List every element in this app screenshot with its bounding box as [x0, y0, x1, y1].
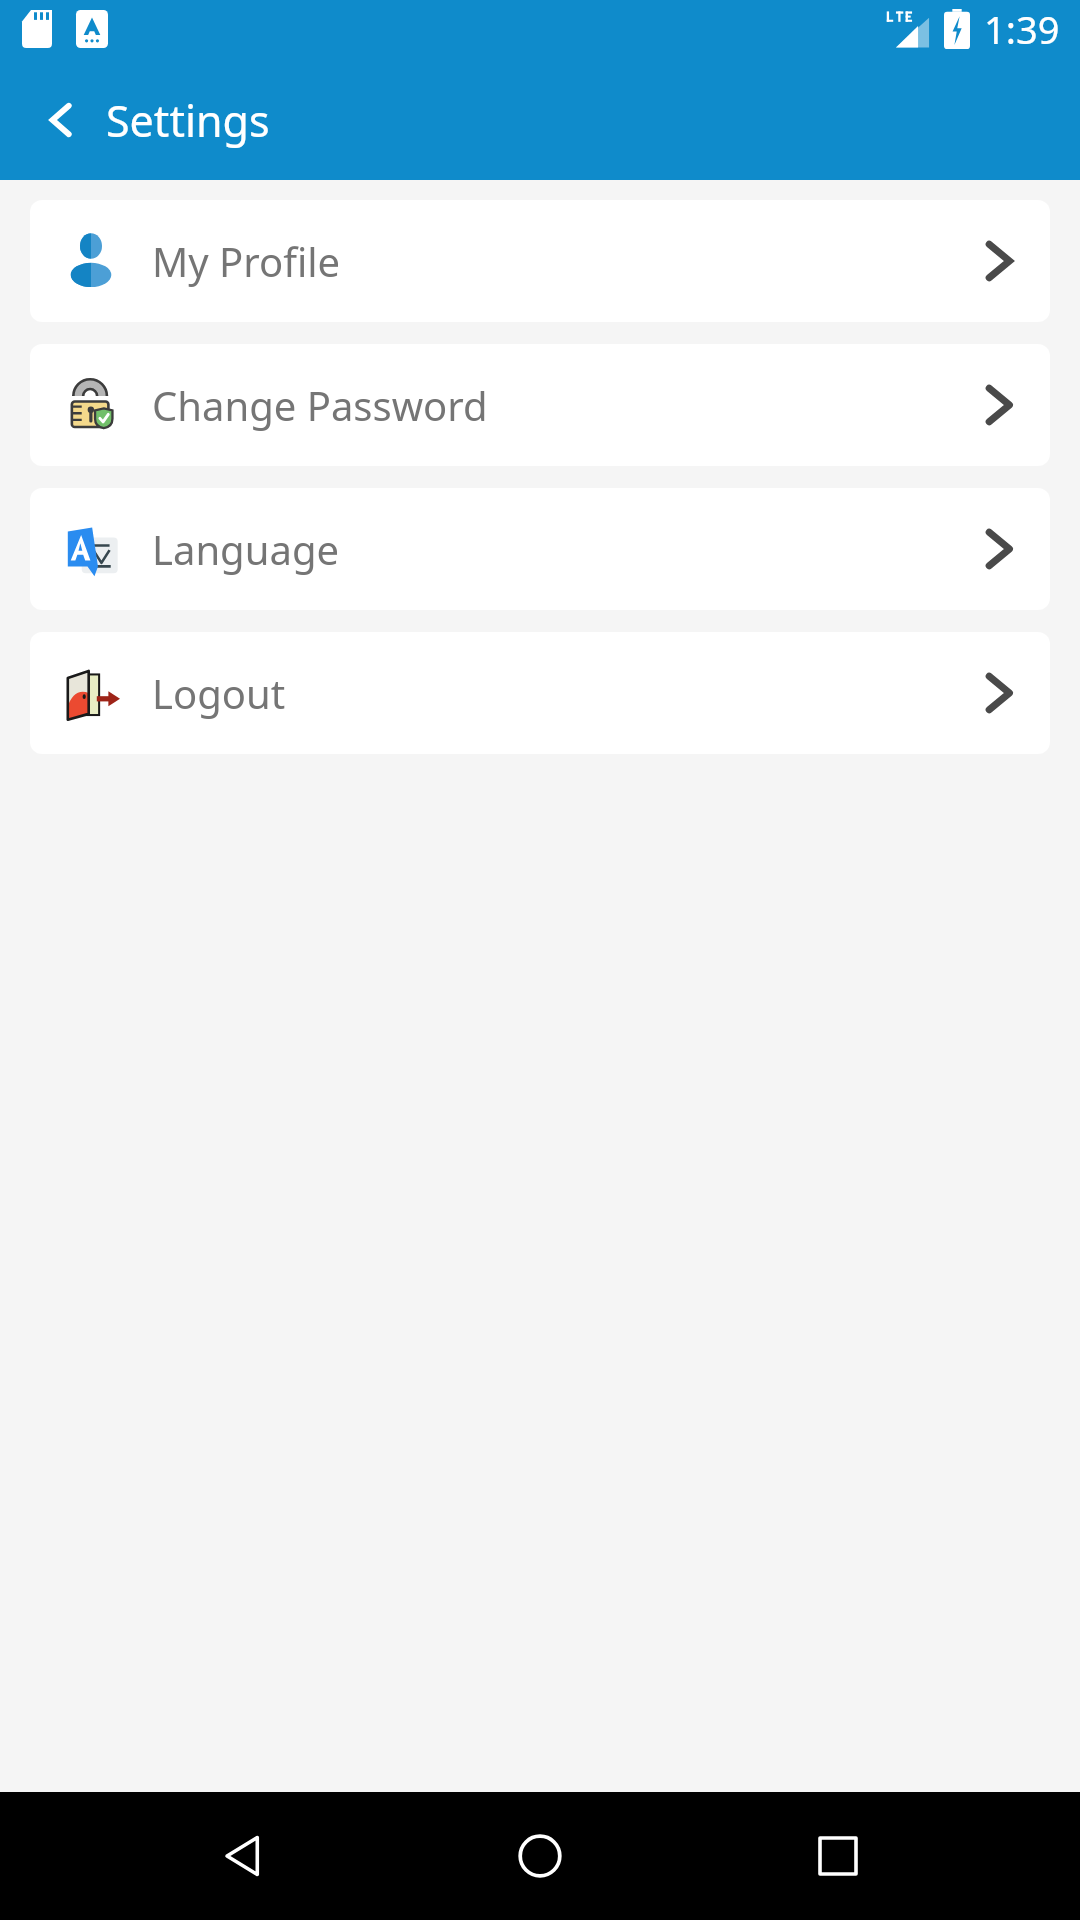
button[interactable]: Recent apps: [783, 1801, 893, 1911]
staticText: Change Password: [152, 378, 488, 432]
staticText: My Profile: [152, 234, 341, 288]
button[interactable]: Logout: [30, 632, 1050, 754]
staticText: Settings: [106, 91, 270, 150]
button[interactable]: Back: [188, 1801, 298, 1911]
button[interactable]: Home: [485, 1801, 595, 1911]
button[interactable]: My Profile: [30, 200, 1050, 322]
staticText: Logout: [152, 666, 286, 720]
button[interactable]: Change Password: [30, 344, 1050, 466]
button[interactable]: Language: [30, 488, 1050, 610]
button[interactable]: Back: [30, 88, 94, 152]
staticText: Language: [152, 522, 340, 576]
staticText: 1:39: [984, 3, 1060, 55]
